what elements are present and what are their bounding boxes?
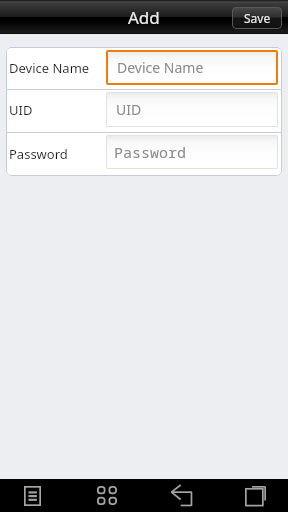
staticText: Device Name <box>9 59 90 77</box>
staticText: Add <box>128 6 160 29</box>
button[interactable]: Overview <box>216 479 288 512</box>
button[interactable]: UID <box>6 90 282 132</box>
staticText: UID <box>9 101 33 119</box>
button[interactable]: Device Name <box>6 47 282 89</box>
staticText: Save <box>244 10 271 26</box>
staticText: UID <box>116 100 142 119</box>
button[interactable]: Menu <box>0 479 72 512</box>
button[interactable]: Recent apps <box>72 479 144 512</box>
staticText: Device Name <box>117 58 204 77</box>
button[interactable]: Password <box>6 133 282 176</box>
staticText: Password <box>9 145 68 163</box>
button[interactable]: Save <box>232 7 282 29</box>
staticText: Password <box>114 142 187 162</box>
button[interactable]: Back <box>144 479 216 512</box>
